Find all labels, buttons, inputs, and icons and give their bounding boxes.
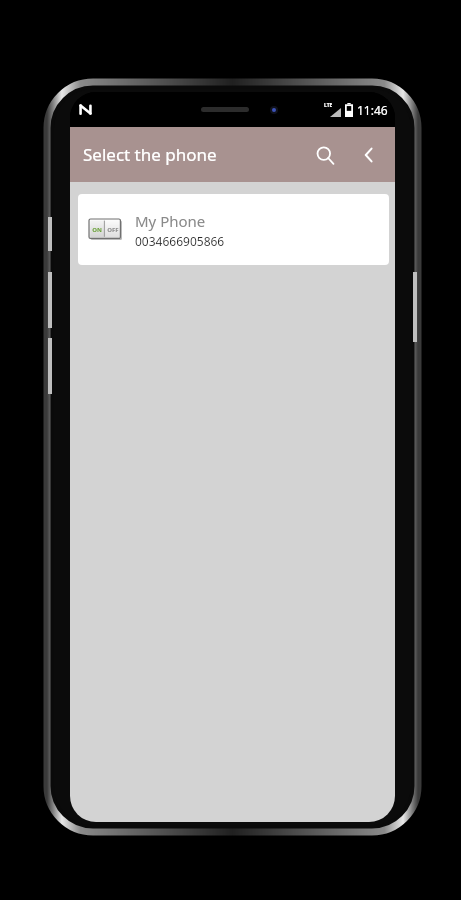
button[interactable]: Toggle phone on or off (78, 194, 389, 265)
staticText: OFF (107, 226, 119, 234)
staticText: 0034666905866 (135, 233, 225, 249)
staticText: Select the phone (83, 143, 217, 166)
button[interactable]: Search (303, 133, 347, 177)
staticText: ON (92, 226, 102, 234)
button[interactable]: Toggle phone on or off (89, 219, 122, 240)
button[interactable]: Back (347, 133, 391, 177)
staticText: LTE (324, 102, 333, 109)
staticText: My Phone (135, 211, 206, 231)
staticText: 11:46 (357, 102, 388, 118)
